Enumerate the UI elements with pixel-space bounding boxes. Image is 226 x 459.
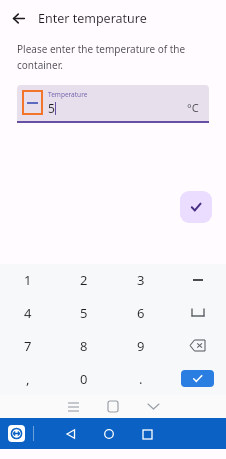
staticText: Please enter the temperature of the cont… [17,42,186,71]
staticText: 3 [137,271,145,289]
button[interactable]: Recents [132,419,162,449]
button[interactable]: Hide keyboard [133,395,173,418]
staticText: 4 [24,304,32,322]
staticText: 0 [80,370,88,388]
staticText: 5 [80,304,88,322]
button[interactable]: space [169,296,226,329]
button[interactable]: 3 [112,264,169,296]
staticText: . [139,370,143,388]
button[interactable]: Home [94,419,124,449]
button[interactable]: Temperature [17,85,209,123]
button[interactable]: Remote control [8,425,25,442]
staticText: 7 [24,337,32,355]
button[interactable]: 8 [56,329,112,362]
button[interactable]: 0 [56,362,112,395]
button[interactable]: 5 [56,296,112,329]
staticText: °C [187,100,199,115]
button[interactable]: 6 [112,296,169,329]
button[interactable]: 4 [0,296,56,329]
staticText: 6 [137,304,145,322]
button[interactable]: . [112,362,169,395]
button[interactable]: 1 [0,264,56,296]
button[interactable]: del [169,329,226,362]
button[interactable]: Confirm [180,191,212,223]
staticText: Enter temperature [38,10,147,27]
staticText: 2 [80,271,88,289]
button[interactable]: , [0,362,56,395]
button[interactable]: Back [4,4,32,32]
button[interactable]: Menu [53,395,93,418]
staticText: 5 [48,100,55,116]
button[interactable]: enter [169,362,226,395]
button[interactable]: minus [169,264,226,296]
button[interactable]: 2 [56,264,112,296]
staticText: 8 [80,337,88,355]
staticText: 9 [137,337,145,355]
button[interactable]: Clipboard [93,395,133,418]
staticText: , [26,370,30,388]
button[interactable]: Done [181,370,214,387]
button[interactable]: 9 [112,329,169,362]
button[interactable]: Back [56,419,86,449]
staticText: Temperature [48,90,88,99]
staticText: 1 [24,271,32,289]
button[interactable]: 7 [0,329,56,362]
